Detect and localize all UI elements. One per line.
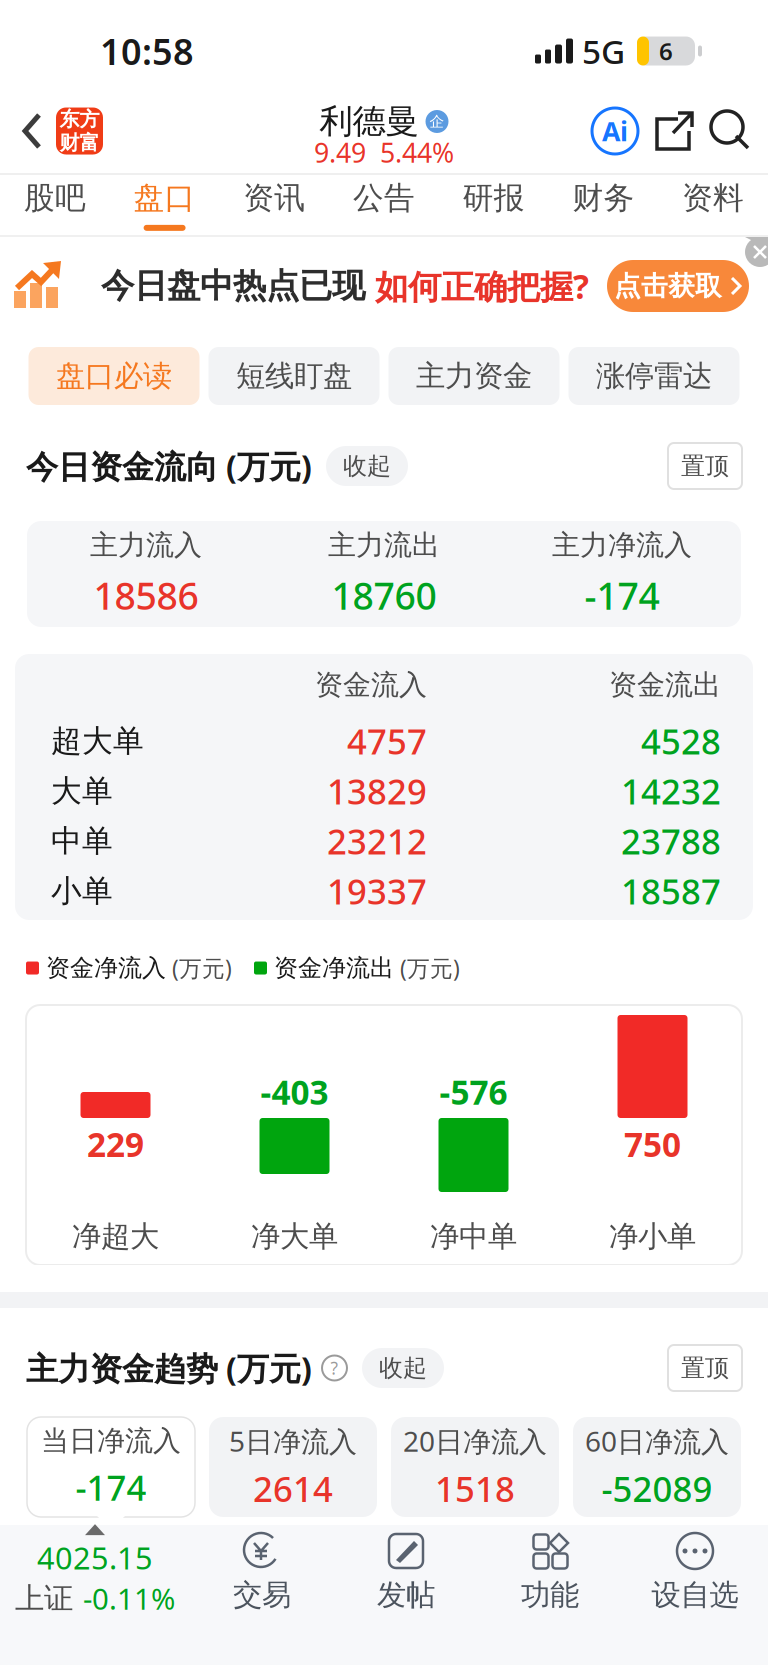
staticText: 资料 [682,179,744,217]
button[interactable]: 收起 [326,446,408,486]
staticText: Ai [602,113,628,149]
staticText: 盘口 [134,179,196,217]
staticText: 资金流入 [315,668,427,702]
staticText: 750 [624,1122,681,1166]
button[interactable]: 研报 [439,175,548,235]
button[interactable]: 资料 [658,175,768,235]
staticText: 5.44% [380,135,454,170]
staticText: (万元) [394,953,460,983]
staticText: 14232 [621,768,721,814]
staticText: -0.11% [83,1579,175,1618]
staticText: 净小单 [609,1218,696,1254]
staticText: 23212 [327,818,427,864]
staticText: 上证 [15,1580,73,1616]
button[interactable]: 4025.15 [0,1525,190,1617]
staticText: 5日净流入 [229,1422,357,1460]
staticText: 股吧 [24,179,86,217]
staticText: 研报 [463,179,525,217]
staticText: 18760 [331,570,436,620]
button[interactable]: 5日净流入 [209,1417,377,1517]
staticText: -576 [439,1070,507,1114]
button[interactable]: 当日净流入 [27,1417,195,1517]
button[interactable]: 盘口必读 [28,347,199,405]
staticText: 置顶 [681,451,729,481]
staticText: 229 [87,1122,144,1166]
staticText: 收起 [379,1353,427,1383]
staticText: 主力资金 [416,358,532,394]
staticText: -403 [260,1070,328,1114]
staticText: 资金净流出 [274,953,394,983]
staticText: 功能 [521,1577,579,1613]
staticText: 设自选 [651,1577,738,1613]
staticText: 财务 [572,179,634,217]
staticText: 1518 [435,1466,515,1512]
staticText: 60日净流入 [585,1422,729,1460]
staticText: 企 [429,112,444,130]
button[interactable]: 资讯 [219,175,329,235]
staticText: 4025.15 [37,1537,153,1578]
button[interactable]: 发帖 [334,1525,478,1617]
staticText: 13829 [327,768,427,814]
staticText: 20日净流入 [403,1422,547,1460]
button[interactable]: 公告 [329,175,439,235]
button[interactable]: 设自选 [622,1525,768,1617]
staticText: 5G [582,29,625,73]
staticText: 大单 [51,772,113,810]
button[interactable]: 置顶 [668,443,742,489]
staticText: 涨停雷达 [596,358,712,394]
staticText: 10:58 [100,27,194,75]
staticText: 资讯 [243,179,305,217]
button[interactable]: 置顶 [668,1345,742,1391]
staticText: 主力流出 [328,528,440,562]
button[interactable]: 东方 [0,89,113,173]
staticText: 23788 [621,818,721,864]
staticText: 9.49 [314,135,366,170]
staticText: 置顶 [681,1353,729,1383]
button[interactable]: 功能 [478,1525,622,1617]
staticText: ? [330,1356,338,1379]
staticText: 利德曼 [319,101,418,142]
button[interactable]: 短线盯盘 [208,347,379,405]
staticText: -52089 [601,1466,712,1512]
staticText: 净超大 [72,1218,159,1254]
button[interactable]: Search [708,108,752,154]
staticText: 小单 [51,872,113,910]
staticText: 发帖 [377,1577,435,1613]
staticText: 主力资金趋势 (万元) [26,1347,312,1389]
button[interactable]: 收起 [362,1348,444,1388]
staticText: 点击获取 [614,270,722,302]
button[interactable]: 点击获取 [607,260,749,312]
staticText: 公告 [353,179,415,217]
button[interactable]: 股吧 [0,175,110,235]
staticText: 主力净流入 [552,528,692,562]
staticText: 短线盯盘 [236,358,352,394]
staticText: 如何正确把握? [375,264,589,308]
staticText: 18587 [621,868,721,914]
staticText: (万元) [166,953,232,983]
button[interactable]: Share [652,107,696,155]
button[interactable]: 涨停雷达 [568,347,739,405]
staticText: 净大单 [251,1218,338,1254]
staticText: 财富 [59,130,99,155]
button[interactable]: 主力资金 [388,347,559,405]
button[interactable]: Close [745,237,768,267]
staticText: 东方 [59,107,99,131]
staticText: 主力流入 [90,528,202,562]
staticText: 今日资金流向 (万元) [26,445,312,487]
staticText: -174 [584,570,659,620]
button[interactable]: 20日净流入 [391,1417,559,1517]
staticText: 4757 [347,718,427,764]
button[interactable]: 盘口 [110,175,219,235]
button[interactable]: 交易 [190,1525,334,1617]
staticText: 盘口必读 [56,358,172,394]
staticText: 今日盘中热点已现 [101,265,365,306]
button[interactable]: 财务 [548,175,658,235]
button[interactable]: 60日净流入 [573,1417,741,1517]
button[interactable]: AI [590,106,640,156]
staticText: 中单 [51,822,113,860]
staticText: 6 [659,35,673,67]
staticText: 超大单 [51,722,144,760]
staticText: 2614 [253,1466,333,1512]
staticText: 资金净流入 [46,953,166,983]
staticText: 收起 [343,451,391,481]
